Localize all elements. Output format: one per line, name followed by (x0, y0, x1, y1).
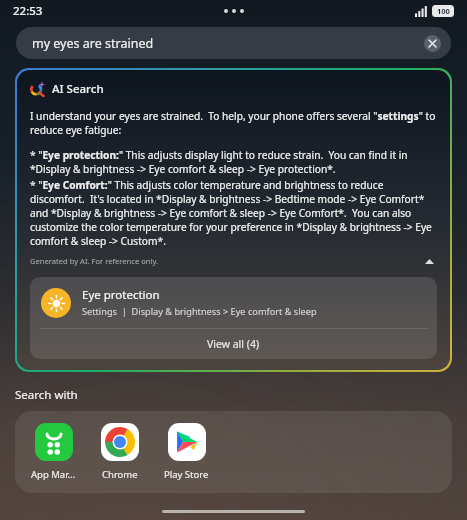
staticText: View all (4) (207, 337, 260, 351)
staticText: * "Eye protection:" This adjusts display… (30, 148, 437, 176)
staticText: I understand your eyes are strained. To … (30, 109, 437, 137)
button[interactable]: Collapse (421, 253, 437, 269)
button[interactable]: Chrome (99, 423, 141, 481)
button[interactable]: Clear search (424, 35, 441, 52)
button[interactable]: AI Search (17, 70, 450, 370)
staticText: 22:53 (13, 3, 43, 19)
staticText: 100 (437, 6, 450, 16)
button[interactable]: Eye protection (30, 277, 437, 328)
staticText: my eyes are strained (32, 35, 424, 52)
staticText: Chrome (102, 468, 138, 481)
button[interactable]: App Mar... (29, 423, 78, 481)
staticText: AI Search (52, 81, 104, 97)
staticText: Settings | Display & brightness > Eye co… (82, 305, 317, 318)
button[interactable]: my eyes are strained (16, 27, 451, 59)
button[interactable]: View all (4) (30, 329, 437, 359)
staticText: App Mar... (31, 468, 76, 481)
staticText: Generated by AI. For reference only. (30, 256, 159, 266)
button[interactable]: Play Store (162, 423, 211, 481)
staticText: * "Eye Comfort:" This adjusts color temp… (30, 178, 437, 248)
staticText: Search with (15, 387, 78, 403)
staticText: Eye protection (82, 287, 160, 303)
staticText: Play Store (164, 468, 209, 481)
